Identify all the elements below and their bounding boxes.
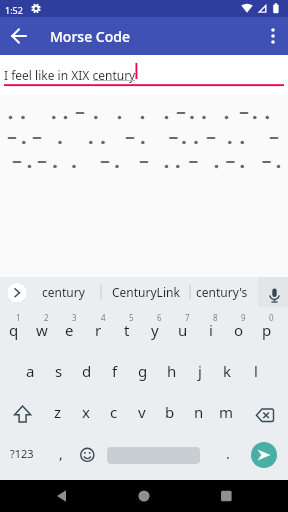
button[interactable]: g: [128, 350, 157, 391]
button[interactable]: s: [44, 350, 73, 391]
staticText: 3: [72, 312, 77, 323]
button[interactable]: o: [224, 309, 253, 350]
staticText: 2: [44, 312, 49, 323]
button[interactable]: I feel like in XIX century: [0, 55, 288, 95]
staticText: 1:52: [5, 4, 23, 16]
staticText: c: [110, 402, 118, 422]
staticText: I feel like in XIX century: [4, 67, 136, 83]
button[interactable]: [245, 391, 288, 432]
staticText: 0: [269, 312, 274, 323]
staticText: z: [54, 402, 62, 422]
staticText: CenturyLink: [112, 284, 180, 300]
staticText: 9: [241, 312, 246, 323]
staticText: century's: [196, 284, 248, 300]
staticText: ,: [59, 444, 63, 463]
staticText: 5: [129, 312, 134, 323]
staticText: q: [9, 320, 19, 340]
button[interactable]: [74, 432, 101, 475]
staticText: 6: [157, 312, 162, 323]
button[interactable]: n: [184, 391, 213, 432]
button[interactable]: .: [214, 432, 241, 475]
button[interactable]: l: [241, 350, 270, 391]
staticText: p: [262, 320, 272, 340]
staticText: g: [138, 361, 148, 381]
staticText: i: [209, 320, 213, 340]
staticText: u: [178, 320, 188, 340]
staticText: ?123: [10, 446, 34, 461]
button[interactable]: [2, 279, 28, 305]
button[interactable]: [260, 23, 286, 49]
button[interactable]: r: [84, 309, 113, 350]
staticText: 4: [101, 312, 106, 323]
button[interactable]: k: [213, 350, 242, 391]
button[interactable]: h: [157, 350, 186, 391]
staticText: 7: [185, 312, 190, 323]
button[interactable]: c: [99, 391, 128, 432]
staticText: t: [124, 320, 130, 340]
button[interactable]: y: [140, 309, 169, 350]
staticText: o: [234, 320, 244, 340]
staticText: e: [65, 320, 74, 340]
staticText: v: [138, 402, 146, 422]
button[interactable]: [251, 442, 277, 468]
button[interactable]: ?123: [0, 432, 43, 475]
button[interactable]: f: [100, 350, 129, 391]
button[interactable]: j: [185, 350, 214, 391]
button[interactable]: v: [127, 391, 156, 432]
button[interactable]: [120, 480, 168, 512]
staticText: m: [219, 402, 234, 422]
staticText: j: [198, 361, 202, 381]
button[interactable]: p: [252, 309, 281, 350]
staticText: x: [82, 402, 90, 422]
button[interactable]: q: [0, 309, 28, 350]
button[interactable]: w: [27, 309, 56, 350]
staticText: w: [36, 320, 48, 340]
staticText: r: [95, 320, 102, 340]
staticText: b: [165, 402, 175, 422]
staticText: s: [55, 361, 63, 381]
button[interactable]: e: [55, 309, 84, 350]
staticText: f: [112, 361, 118, 381]
button[interactable]: d: [72, 350, 101, 391]
button[interactable]: i: [196, 309, 225, 350]
button[interactable]: ,: [47, 432, 74, 475]
button[interactable]: t: [112, 309, 141, 350]
button[interactable]: m: [212, 391, 241, 432]
button[interactable]: century's: [191, 277, 253, 307]
staticText: Morse Code: [50, 27, 130, 46]
staticText: 1: [16, 312, 21, 323]
button[interactable]: b: [155, 391, 184, 432]
staticText: y: [151, 320, 159, 340]
staticText: n: [194, 402, 204, 422]
button[interactable]: CenturyLink: [102, 277, 189, 307]
staticText: h: [167, 361, 177, 381]
staticText: k: [223, 361, 232, 381]
staticText: a: [26, 361, 35, 381]
staticText: 8: [213, 312, 218, 323]
staticText: d: [82, 361, 92, 381]
button[interactable]: [258, 277, 288, 307]
button[interactable]: [38, 480, 86, 512]
button[interactable]: x: [71, 391, 100, 432]
staticText: .: [226, 444, 230, 463]
button[interactable]: [0, 391, 43, 432]
button[interactable]: [6, 23, 32, 49]
button[interactable]: a: [16, 350, 45, 391]
staticText: l: [254, 361, 258, 381]
button[interactable]: u: [168, 309, 197, 350]
button[interactable]: century: [30, 277, 96, 307]
button[interactable]: z: [43, 391, 72, 432]
staticText: century: [42, 284, 85, 300]
button[interactable]: [202, 480, 250, 512]
